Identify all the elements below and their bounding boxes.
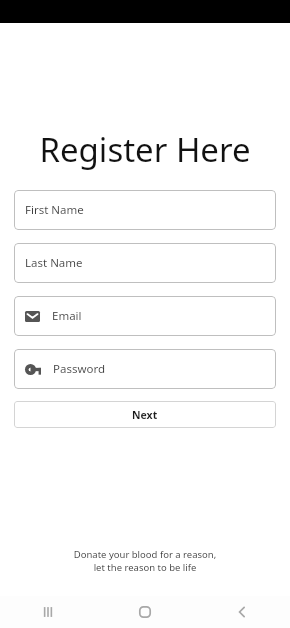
button[interactable]: Recent apps <box>0 596 96 628</box>
button[interactable]: First Name <box>14 190 276 230</box>
staticText: Last Name <box>25 255 83 271</box>
button[interactable]: Next <box>14 401 276 428</box>
staticText: Donate your blood for a reason, let the … <box>20 548 270 574</box>
button[interactable]: Home <box>96 596 193 628</box>
staticText: Register Here <box>0 127 290 172</box>
staticText: First Name <box>25 202 84 218</box>
button[interactable]: Password <box>14 349 276 389</box>
staticText: Next <box>132 408 158 422</box>
button[interactable]: Last Name <box>14 243 276 283</box>
button[interactable]: Email <box>14 296 276 336</box>
button[interactable]: Back <box>193 596 290 628</box>
staticText: Email <box>52 308 82 324</box>
staticText: Password <box>53 361 106 377</box>
